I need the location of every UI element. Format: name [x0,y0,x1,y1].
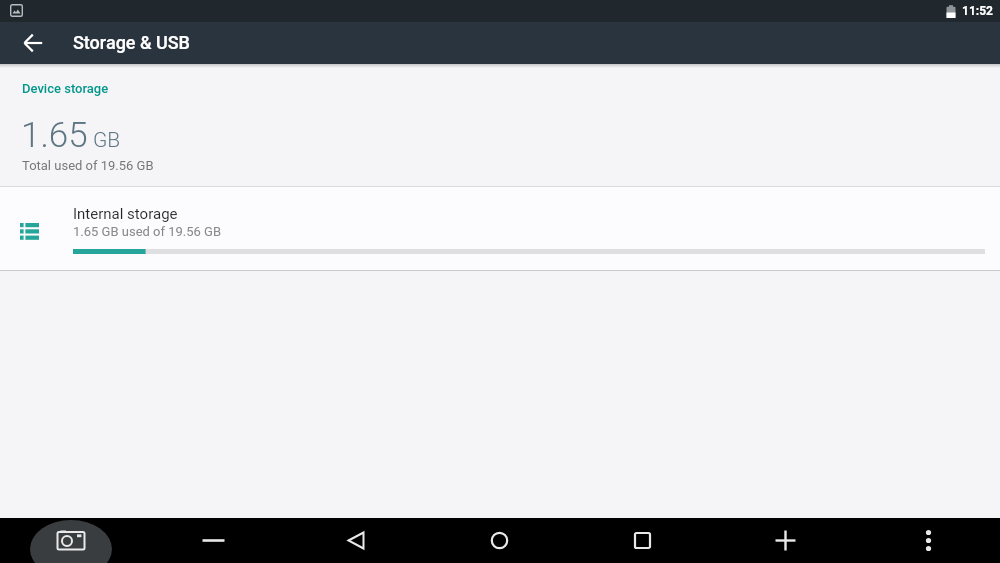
staticText: Internal storage [73,205,178,223]
staticText: Total used of 19.56 GB [22,158,154,173]
button[interactable] [428,518,571,563]
button[interactable] [571,518,714,563]
button[interactable] [11,22,55,64]
button[interactable] [0,518,142,563]
button[interactable] [142,518,285,563]
staticText: 1.65 [21,115,88,156]
button[interactable] [714,518,857,563]
button[interactable] [285,518,428,563]
button[interactable] [0,187,1000,270]
staticText: Device storage [22,81,109,96]
staticText: Storage & USB [73,32,190,53]
staticText: 1.65 GB used of 19.56 GB [73,224,222,239]
staticText: GB [93,128,121,153]
staticText: 11:52 [962,4,993,18]
button[interactable] [857,518,1000,563]
